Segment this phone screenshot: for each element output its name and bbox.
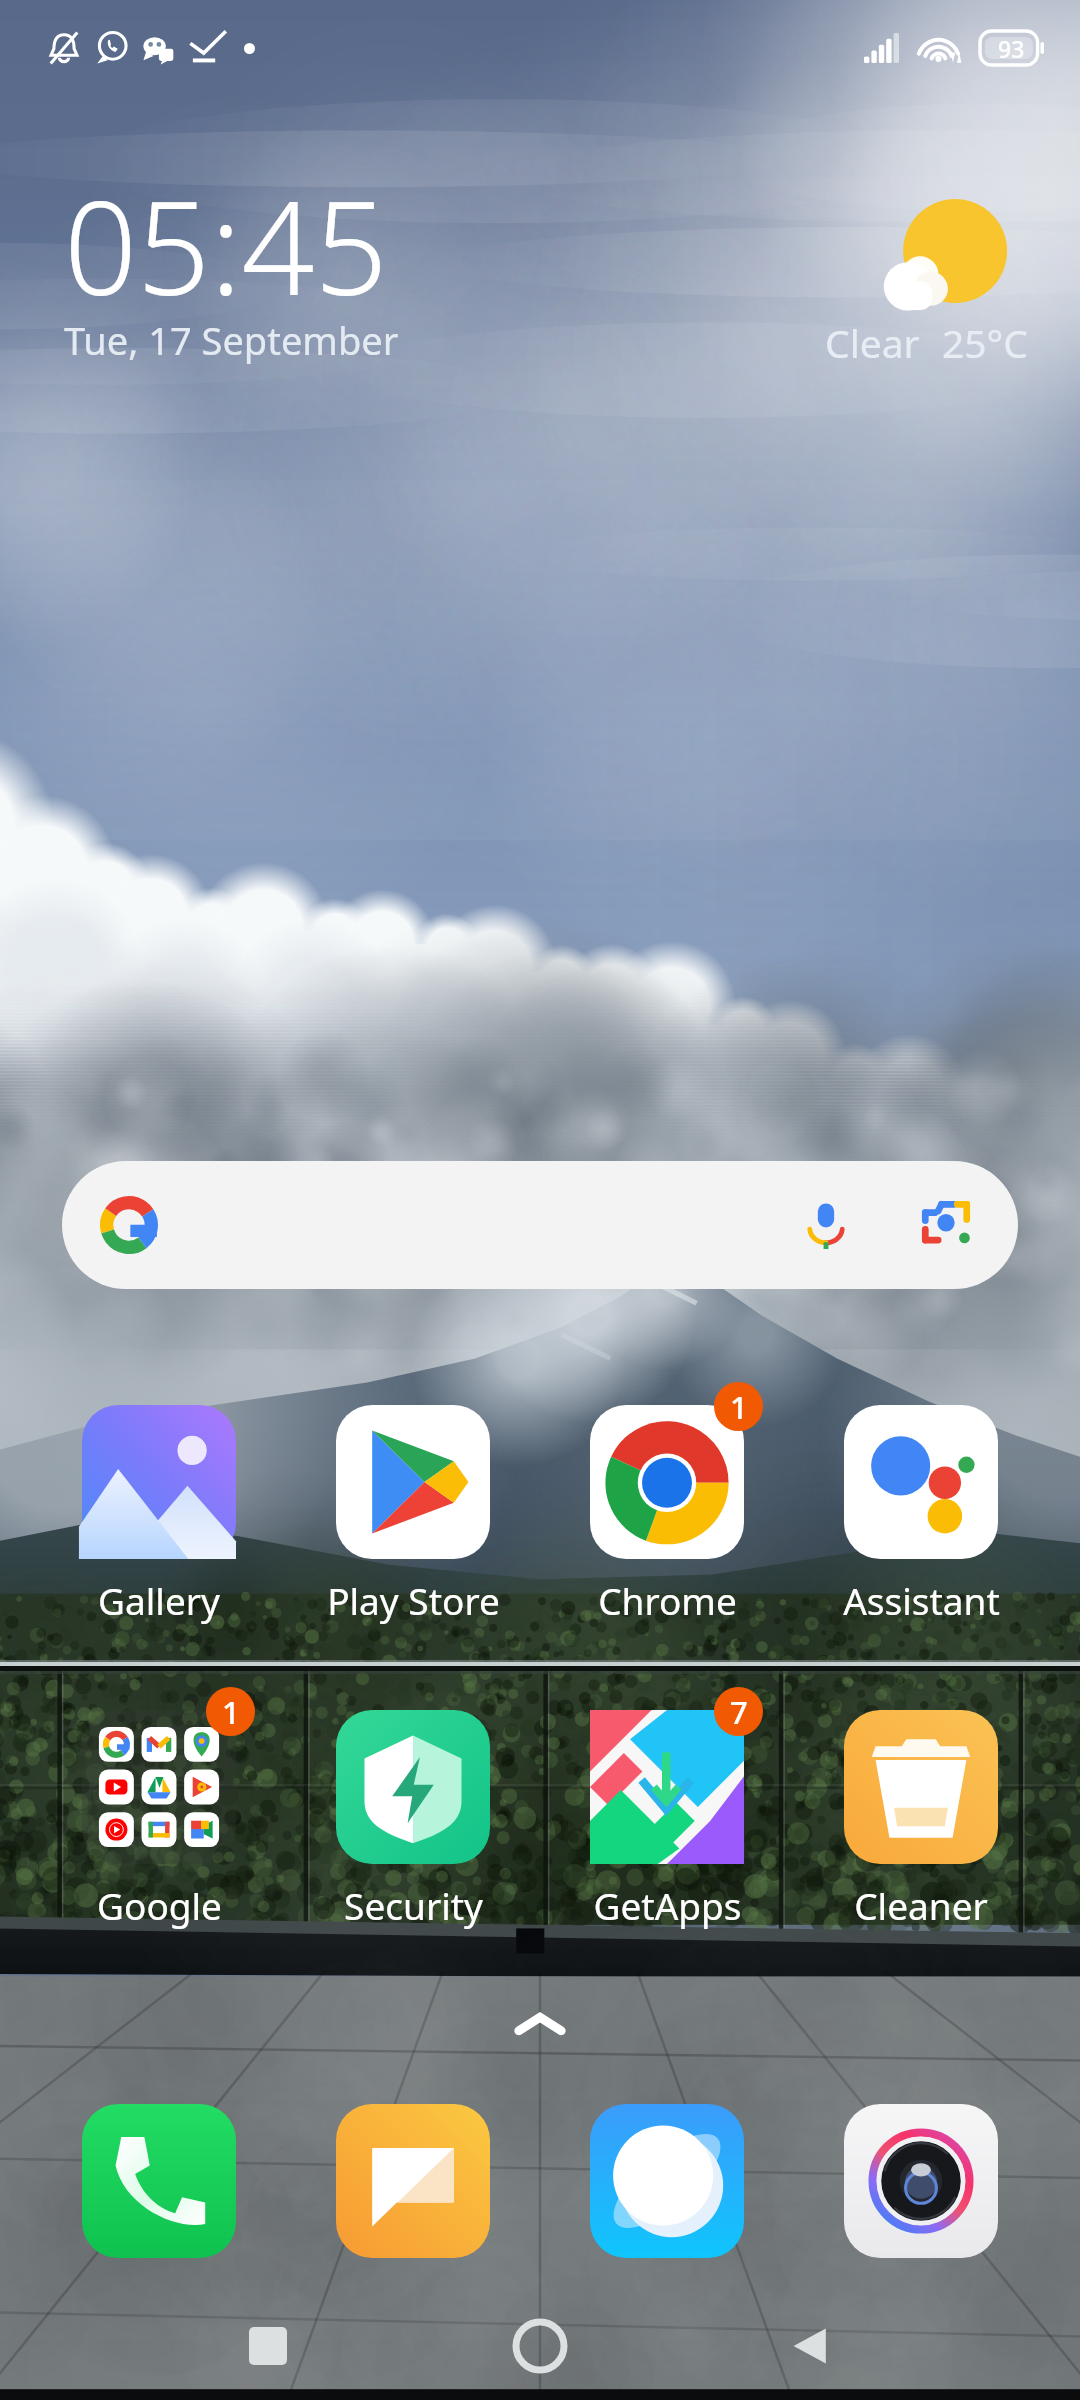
staticText: 1 [222, 1691, 240, 1733]
button[interactable]: Phone [43, 2096, 275, 2266]
button[interactable]: App drawer [505, 2000, 575, 2048]
button[interactable]: 7 [551, 1694, 783, 1930]
staticText: 05:45 [64, 158, 388, 332]
staticText: Play Store [327, 1575, 500, 1625]
button[interactable] [62, 1161, 1018, 1289]
staticText: 93 [998, 33, 1025, 64]
button[interactable]: Home [494, 2300, 586, 2392]
staticText: Google [97, 1880, 222, 1930]
button[interactable]: Gallery [43, 1389, 275, 1625]
staticText: GetApps [593, 1880, 742, 1930]
button[interactable]: Back [766, 2300, 858, 2392]
button[interactable]: 1 [551, 1389, 783, 1625]
staticText: Security [344, 1880, 483, 1930]
staticText: Assistant [843, 1575, 1000, 1625]
button[interactable]: Recents [222, 2300, 314, 2392]
button[interactable]: Cleaner [805, 1694, 1037, 1930]
button[interactable]: Clear [825, 192, 1028, 369]
button[interactable]: Play Store [297, 1389, 529, 1625]
staticText: Gallery [98, 1575, 220, 1625]
staticText: 1 [730, 1386, 748, 1428]
button[interactable]: Camera [805, 2096, 1037, 2266]
staticText: Tue, 17 September [64, 314, 399, 366]
staticText: Chrome [598, 1575, 737, 1625]
staticText: 7 [730, 1691, 748, 1733]
staticText: Cleaner [854, 1880, 988, 1930]
button[interactable]: Messages [297, 2096, 529, 2266]
button[interactable]: 05:45 [64, 158, 399, 384]
button[interactable]: Assistant [805, 1389, 1037, 1625]
button[interactable]: 1 [43, 1694, 275, 1930]
staticText: Clear [825, 316, 920, 369]
button[interactable]: Security [297, 1694, 529, 1930]
staticText: 25°C [942, 316, 1028, 369]
button[interactable]: Browser [551, 2096, 783, 2266]
